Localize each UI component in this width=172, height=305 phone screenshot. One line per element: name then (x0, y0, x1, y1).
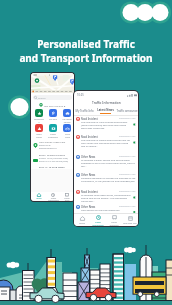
staticText: Car rental service (62, 118, 72, 123)
staticText: The slow lane of Lung Cheung Road flyove… (81, 121, 132, 130)
button[interactable]: Traffic Information (90, 214, 106, 226)
staticText: about 7m B (39, 144, 51, 147)
staticText: Latest News (97, 108, 114, 112)
button[interactable]: Other News (74, 154, 138, 172)
staticText: 2020/06/06 14:05 (119, 135, 136, 138)
staticText: Route 18 A/C Full service (Final) (39, 160, 69, 163)
staticText: To facilitate road repair works, the wes… (81, 194, 132, 203)
staticText: Road Incident (81, 135, 98, 138)
staticText: 2020/06/06 14:05 (119, 117, 136, 120)
staticText: Traffic Information (92, 101, 121, 105)
button[interactable]: Road Works (31, 124, 46, 138)
button[interactable]: Road Incident (74, 189, 138, 204)
button[interactable]: Search (33, 95, 72, 100)
staticText: Traffic Snapshots (48, 133, 58, 138)
button[interactable]: Latest News (95, 107, 116, 115)
staticText: Other News (81, 155, 96, 158)
button[interactable]: Other News (74, 172, 138, 189)
staticText: 10:25 (77, 93, 84, 97)
staticText: Bookmark s (34, 118, 44, 123)
staticText: parking spaces 27 (39, 147, 57, 150)
staticText: Traffic Information (92, 221, 104, 226)
staticText: Travel Tools (64, 197, 70, 201)
button[interactable]: Travel Tools (60, 192, 74, 201)
staticText: EXIT 1A to STAR FERRY (39, 165, 65, 168)
staticText: Mei Foo MTR Exit B (44, 104, 66, 107)
staticText: Traffic Information (48, 197, 59, 201)
staticText: arrived 10:35 (Automatic Stop) (39, 157, 68, 160)
button[interactable]: Car rental service (60, 109, 74, 123)
button[interactable]: EXIT 1A to STAR FERRY (33, 165, 72, 168)
staticText: Following measures to contain the outbre… (81, 177, 136, 183)
staticText: Other News (81, 173, 96, 176)
button[interactable]: Other News (74, 204, 138, 213)
staticText: 2020/06/06 14:05 (119, 190, 136, 193)
staticText: To facilitate a public service and leisu… (81, 159, 136, 168)
button[interactable]: Traffic Information (46, 192, 60, 201)
button[interactable]: My Traffic Info (74, 107, 95, 115)
staticText: Car park (49, 118, 57, 121)
button[interactable]: Hoi's Cameo Urban Park (33, 141, 72, 150)
button[interactable]: Route (31, 192, 46, 201)
staticText: Road Works (36, 133, 42, 138)
staticText: EXIT F to KWUN TONG (39, 153, 65, 156)
staticText: Traffic announce (116, 109, 138, 113)
button[interactable]: EXIT F to KWUN TONG (33, 153, 72, 163)
staticText: Route (36, 197, 42, 200)
button[interactable]: Car park (46, 109, 60, 121)
staticText: Train service on the High Speed Rail (81, 209, 132, 212)
staticText: 2020/06/06 14:05 (119, 205, 136, 208)
staticText: Real-time Tool (123, 222, 137, 225)
staticText: Route (79, 222, 85, 225)
button[interactable]: Travel Transport (106, 214, 122, 226)
button[interactable]: Road Incident (74, 134, 138, 154)
staticText: Travel Transport (109, 221, 119, 226)
staticText: Hoi's Cameo Urban Park (39, 141, 66, 144)
staticText: Personalised Traffic (37, 37, 135, 51)
button[interactable]: Traffic announce (116, 107, 138, 115)
button[interactable]: Bookmark s (31, 109, 46, 123)
staticText: Search (38, 96, 46, 99)
staticText: Cycle Track (65, 133, 70, 138)
staticText: Road Incident (81, 117, 98, 120)
staticText: My Traffic Info (75, 109, 94, 113)
staticText: Road Incident (81, 190, 98, 193)
staticText: Other News (81, 205, 96, 208)
staticText: and Transport Information (19, 51, 153, 65)
staticText: 2020/06/06 14:05 (119, 173, 136, 176)
button[interactable]: Road Incident (74, 116, 138, 134)
button[interactable]: Traffic Snapshots (46, 124, 60, 138)
staticText: 2020/06/06 14:05 (119, 155, 136, 158)
staticText: The slow lane of Kwong Road Flyover near… (81, 139, 132, 148)
button[interactable]: Real-time Tool (122, 214, 138, 226)
button[interactable]: Route (74, 214, 90, 226)
button[interactable]: Cycle Track (60, 124, 74, 138)
